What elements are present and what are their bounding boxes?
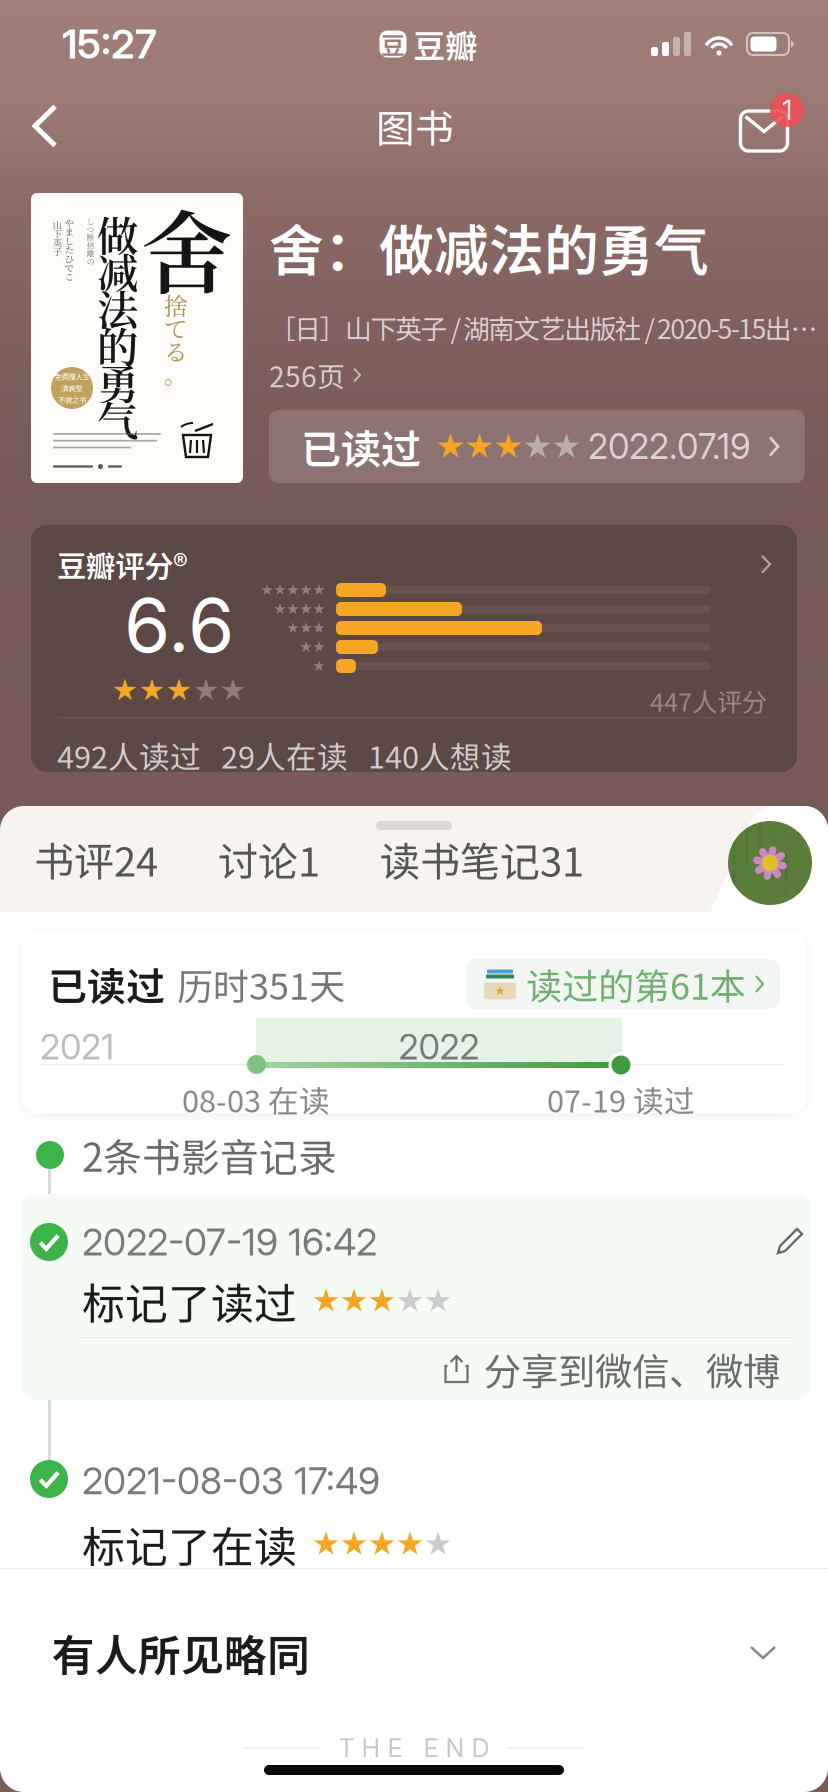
staticText: 2条书影音记录 [82, 1127, 337, 1183]
button[interactable]: 讨论1 [188, 806, 350, 912]
staticText: 山 [53, 218, 62, 231]
button[interactable]: 有人所见略同 [22, 1595, 806, 1710]
staticText: ［日］山下英子 / 湖南文艺出版社 / 2020-5-15出版 / [269, 308, 819, 347]
staticText: 08-03 在读 [182, 1077, 330, 1121]
staticText: て [164, 310, 188, 345]
staticText: や [65, 216, 74, 229]
staticText: 2022 [398, 1026, 479, 1068]
staticText: 6.6 [124, 580, 234, 670]
staticText: 1 [782, 94, 792, 126]
staticText: し [87, 215, 95, 227]
staticText: 标记了读过 [82, 1270, 297, 1332]
button[interactable]: 读过的第61本 [467, 959, 780, 1009]
button[interactable]: 豆瓣评分® [31, 525, 797, 772]
staticText: 豆瓣 [413, 21, 477, 67]
staticText: 子 [53, 245, 62, 258]
staticText: し [65, 234, 74, 247]
staticText: 豆瓣评分® [57, 543, 188, 585]
staticText: 492人读过 [57, 733, 201, 777]
staticText: 读书笔记31 [380, 830, 584, 888]
staticText: 07-19 读过 [547, 1077, 695, 1121]
button[interactable]: Messages [740, 93, 828, 159]
staticText: 2021 [40, 1026, 114, 1068]
staticText: 447人评分 [650, 682, 767, 719]
staticText: 已读过 [48, 956, 165, 1012]
staticText: で [65, 261, 74, 274]
staticText: 舍 [141, 182, 232, 312]
staticText: 2021-08-03 17:49 [82, 1458, 380, 1503]
staticText: 英 [53, 236, 62, 249]
button[interactable]: 已读过 [269, 410, 805, 483]
staticText: 减 [97, 241, 138, 300]
staticText: 做 [97, 204, 138, 263]
staticText: T H E E N D [338, 1733, 489, 1763]
staticText: 免费赠人生 [54, 371, 89, 382]
staticText: 图书 [376, 98, 454, 154]
staticText: 断 [87, 231, 95, 243]
staticText: 15:27 [62, 20, 157, 68]
staticText: 豆 [381, 27, 405, 61]
staticText: 讨论1 [218, 830, 320, 888]
button[interactable]: Back [0, 93, 90, 159]
staticText: 气 [97, 389, 138, 448]
staticText: 法 [97, 278, 138, 337]
staticText: つ [87, 223, 95, 235]
button[interactable]: 书评24 [4, 806, 188, 912]
staticText: 读过的第61本 [526, 958, 746, 1010]
button[interactable]: Profile [718, 811, 822, 915]
staticText: 书评24 [34, 830, 158, 888]
button[interactable]: 分享到微信、微博 [70, 1338, 810, 1400]
button[interactable]: 读书笔记31 [350, 806, 614, 912]
staticText: 2022-07-19 16:42 [82, 1219, 377, 1265]
staticText: 有人所见略同 [52, 1622, 310, 1683]
button[interactable]: Edit [770, 1222, 810, 1262]
staticText: 140人想读 [368, 733, 512, 777]
staticText: 分享到微信、微博 [484, 1342, 780, 1396]
staticText: 。 [164, 356, 188, 391]
staticText: 的 [97, 315, 138, 374]
staticText: 标记了在读 [82, 1513, 297, 1575]
staticText: 舍：做减法的勇气 [269, 207, 709, 286]
staticText: こ [65, 270, 74, 283]
staticText: 已读过 [301, 417, 421, 475]
staticText: ひ [65, 252, 74, 265]
staticText: た [65, 243, 74, 256]
staticText: 離 [87, 247, 95, 259]
staticText: ま [65, 225, 74, 238]
staticText: 下 [53, 227, 62, 240]
staticText: 29人在读 [221, 733, 348, 777]
staticText: 不做之书 [58, 394, 86, 405]
staticText: 2022.07.19 [588, 425, 751, 467]
staticText: 256页 [269, 355, 345, 395]
staticText: 捨 [164, 287, 188, 322]
staticText: の [87, 255, 95, 267]
staticText: 历时351天 [177, 958, 345, 1010]
staticText: 清爽型 [61, 383, 82, 393]
staticText: 捨 [87, 239, 95, 251]
staticText: 勇 [97, 352, 138, 411]
staticText: る [164, 333, 188, 368]
